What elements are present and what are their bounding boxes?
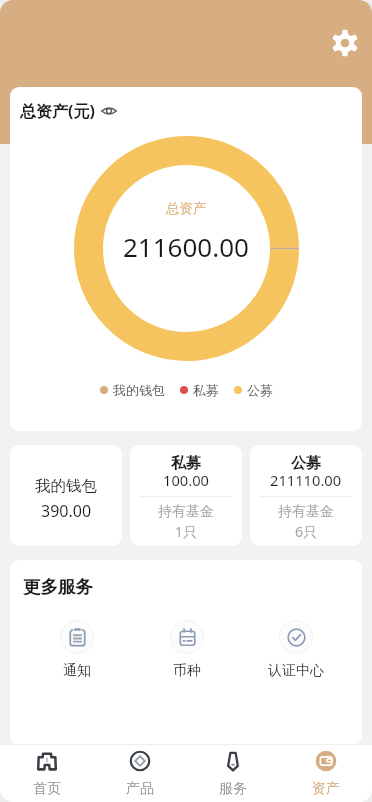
staticText: 产品 — [126, 780, 154, 798]
staticText: 6只 — [295, 522, 318, 541]
staticText: 更多服务 — [23, 576, 93, 598]
button[interactable]: 服务 — [186, 745, 279, 802]
button[interactable]: Toggle visibility — [101, 103, 117, 119]
staticText: 持有基金 — [158, 503, 214, 521]
button[interactable]: 认证中心 — [241, 620, 350, 680]
staticText: 100.00 — [163, 470, 209, 490]
staticText: 持有基金 — [278, 503, 334, 521]
staticText: 总资产(元) — [20, 100, 95, 122]
staticText: 1只 — [175, 522, 198, 541]
button[interactable]: 资产 — [279, 745, 372, 802]
staticText: 我的钱包 — [113, 382, 165, 398]
button[interactable]: 我的钱包 — [10, 445, 122, 546]
staticText: 私募 — [171, 454, 201, 473]
button[interactable]: Settings — [331, 29, 359, 57]
button[interactable]: 通知 — [22, 620, 132, 680]
button[interactable]: 首页 — [0, 745, 93, 802]
staticText: 我的钱包 — [35, 476, 97, 496]
button[interactable]: 私募 — [130, 445, 242, 546]
staticText: 公募 — [291, 454, 321, 473]
staticText: 首页 — [33, 780, 61, 798]
staticText: 211110.00 — [270, 470, 342, 490]
staticText: 服务 — [219, 780, 247, 798]
staticText: 公募 — [247, 382, 273, 398]
staticText: 211600.00 — [123, 229, 249, 264]
staticText: 通知 — [63, 662, 91, 680]
button[interactable]: 币种 — [132, 620, 241, 680]
staticText: 认证中心 — [268, 662, 324, 680]
staticText: 私募 — [193, 382, 219, 398]
staticText: 总资产 — [166, 200, 207, 217]
staticText: 币种 — [173, 662, 201, 680]
staticText: 资产 — [312, 780, 340, 798]
button[interactable]: 公募 — [250, 445, 362, 546]
staticText: 390.00 — [41, 500, 92, 522]
button[interactable]: 产品 — [93, 745, 186, 802]
